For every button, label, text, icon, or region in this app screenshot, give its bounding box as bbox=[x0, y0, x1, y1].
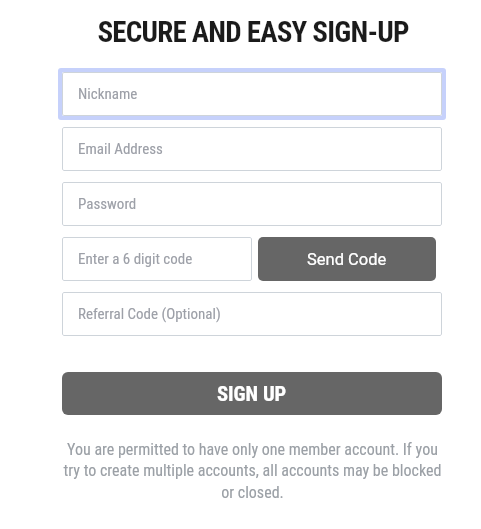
staticText: Referral Code (Optional) bbox=[78, 305, 221, 323]
staticText: Enter a 6 digit code bbox=[78, 250, 193, 268]
button[interactable]: Send Code bbox=[258, 237, 436, 281]
button[interactable]: SIGN UP bbox=[62, 372, 442, 415]
button[interactable]: Enter a 6 digit code bbox=[62, 237, 252, 281]
staticText: Email Address bbox=[78, 140, 163, 158]
staticText: SIGN UP bbox=[217, 382, 287, 406]
button[interactable]: Nickname bbox=[62, 72, 442, 116]
staticText: Send Code bbox=[307, 250, 387, 269]
staticText: Password bbox=[78, 195, 137, 213]
staticText: SECURE AND EASY SIGN-UP bbox=[97, 15, 409, 49]
staticText: You are permitted to have only one membe… bbox=[62, 440, 443, 502]
button[interactable]: Referral Code (Optional) bbox=[62, 292, 442, 336]
button[interactable]: Email Address bbox=[62, 127, 442, 171]
button[interactable]: Password bbox=[62, 182, 442, 226]
staticText: Nickname bbox=[78, 85, 138, 103]
